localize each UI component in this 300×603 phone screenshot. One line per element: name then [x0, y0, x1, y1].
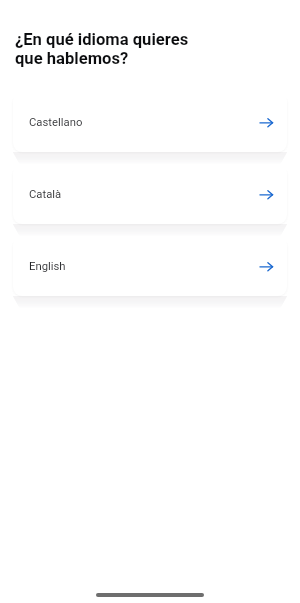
other: Seleccionar idioma: [259, 116, 273, 128]
other: Seleccionar idioma: [259, 260, 273, 272]
staticText: English: [29, 260, 66, 273]
staticText: Català: [29, 188, 62, 201]
button[interactable]: English: [13, 236, 287, 296]
button[interactable]: Català: [13, 164, 287, 224]
other: Seleccionar idioma: [259, 188, 273, 200]
button[interactable]: Castellano: [13, 92, 287, 152]
staticText: ¿En qué idioma quieres que hablemos?: [15, 30, 189, 68]
staticText: Castellano: [29, 116, 83, 129]
